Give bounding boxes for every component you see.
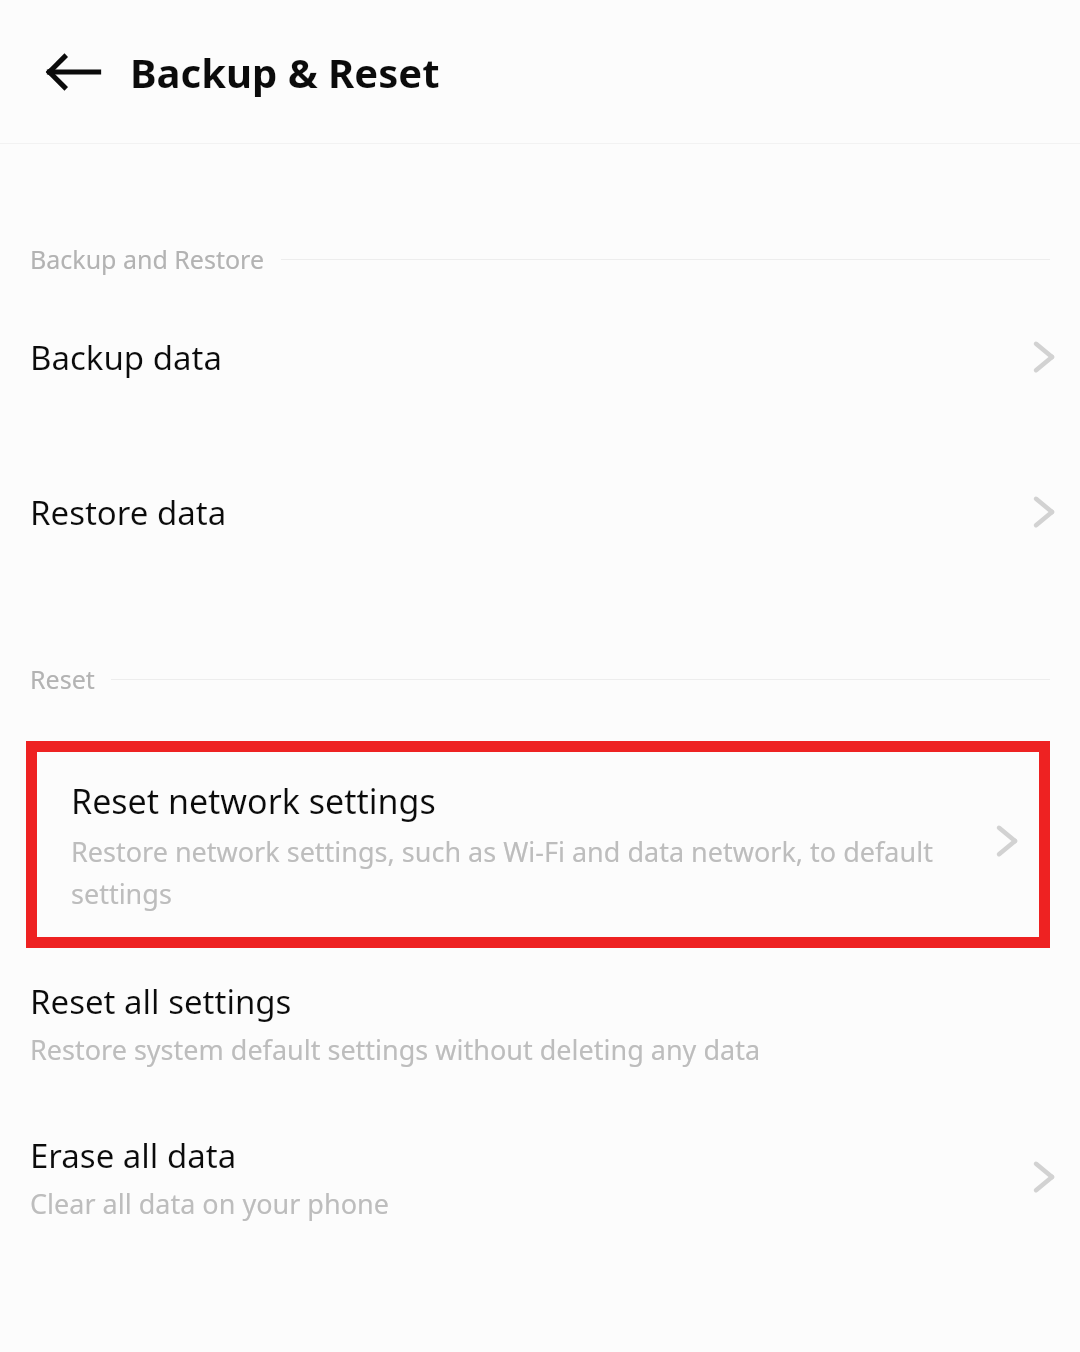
staticText: Backup data	[30, 335, 222, 380]
staticText: Restore network settings, such as Wi-Fi …	[71, 833, 973, 912]
staticText: Reset network settings	[71, 778, 436, 824]
staticText: Backup & Reset	[130, 45, 440, 99]
button[interactable]: Restore data	[0, 473, 1080, 551]
staticText: Erase all data	[30, 1133, 237, 1178]
staticText: Restore system default settings without …	[30, 1031, 761, 1068]
staticText: Restore data	[30, 490, 227, 535]
staticText: Reset	[30, 662, 95, 696]
button[interactable]: Erase all data	[0, 1122, 1080, 1232]
staticText: Clear all data on your phone	[30, 1185, 389, 1222]
button[interactable]: Reset all settings	[0, 968, 1080, 1078]
button[interactable]: Reset network settings	[37, 752, 1039, 937]
staticText: Reset all settings	[30, 979, 292, 1024]
button[interactable]: Backup data	[0, 318, 1080, 396]
staticText: Backup and Restore	[30, 242, 265, 276]
button[interactable]: Back	[40, 38, 108, 106]
